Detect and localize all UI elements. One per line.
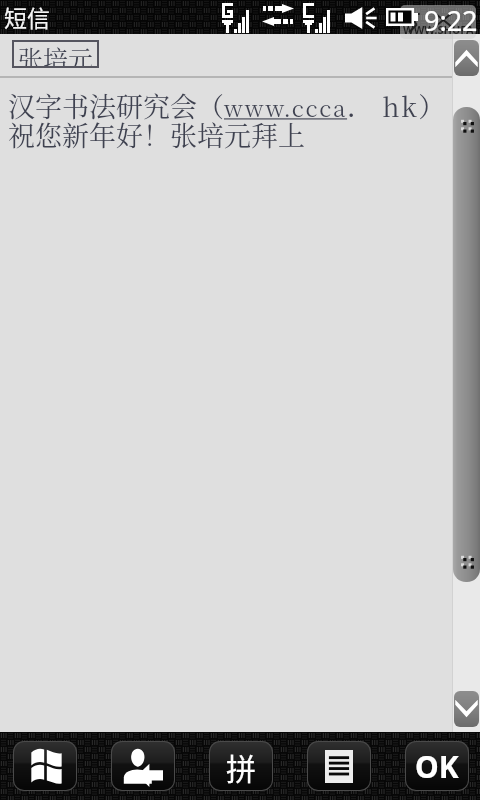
- button[interactable]: Start: [14, 742, 76, 790]
- staticText: 9:22: [424, 2, 478, 36]
- button[interactable]: OK: [406, 742, 468, 790]
- button[interactable]: Scroll down: [454, 691, 479, 727]
- staticText: 拼: [226, 745, 256, 788]
- button[interactable]: Scroll position: [453, 107, 480, 582]
- staticText: WWW.SHUFA.ORG: [403, 22, 476, 37]
- staticText: 短信: [4, 0, 50, 33]
- staticText: OK: [415, 746, 459, 787]
- staticText: 张培元: [18, 40, 94, 68]
- staticText: 汉字书法研究会（www.ccca． hk） 祝您新年好！张培元拜上: [8, 86, 446, 154]
- button[interactable]: Scroll up: [454, 40, 479, 76]
- button[interactable]: Add contact: [112, 742, 174, 790]
- button[interactable]: Menu: [308, 742, 370, 790]
- button[interactable]: 张培元: [12, 40, 99, 68]
- button[interactable]: Input method: [210, 742, 272, 790]
